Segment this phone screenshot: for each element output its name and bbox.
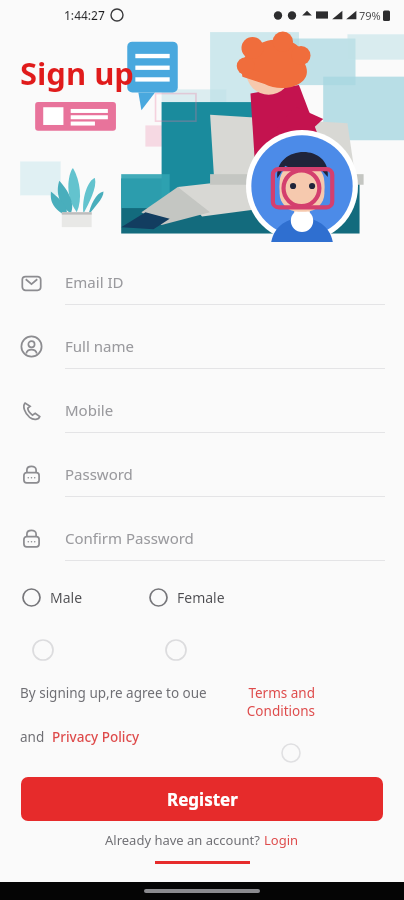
- button[interactable]: Privacy Policy: [52, 728, 140, 746]
- staticText: Female: [177, 588, 225, 607]
- button[interactable]: Email ID: [0, 260, 404, 324]
- button[interactable]: Password: [0, 452, 404, 516]
- button[interactable]: Option two: [162, 636, 190, 664]
- button[interactable]: Male: [20, 584, 85, 611]
- staticText: and: [20, 728, 52, 746]
- staticText: Confirm Password: [65, 528, 194, 548]
- button[interactable]: Terms and Conditions: [211, 684, 315, 720]
- button[interactable]: Female: [147, 584, 227, 611]
- staticText: Already have an account?: [105, 831, 264, 849]
- button[interactable]: Register: [21, 777, 383, 821]
- staticText: By signing up,re agree to oue: [20, 684, 211, 702]
- staticText: Mobile: [65, 400, 114, 420]
- staticText: Male: [50, 588, 83, 607]
- staticText: Login: [264, 831, 299, 849]
- button[interactable]: Option one: [29, 636, 57, 664]
- staticText: Full name: [65, 336, 134, 356]
- button[interactable]: Mobile: [0, 388, 404, 452]
- button[interactable]: Confirm Password: [0, 516, 404, 580]
- staticText: Terms and Conditions: [211, 684, 315, 720]
- staticText: Privacy Policy: [52, 728, 140, 746]
- button[interactable]: Full name: [0, 324, 404, 388]
- staticText: Sign up: [20, 52, 134, 94]
- staticText: 1:44:27: [64, 7, 105, 23]
- button[interactable]: Login: [264, 831, 299, 849]
- staticText: Password: [65, 464, 133, 484]
- staticText: Register: [167, 788, 238, 811]
- staticText: Email ID: [65, 272, 124, 292]
- staticText: 79%: [359, 8, 381, 23]
